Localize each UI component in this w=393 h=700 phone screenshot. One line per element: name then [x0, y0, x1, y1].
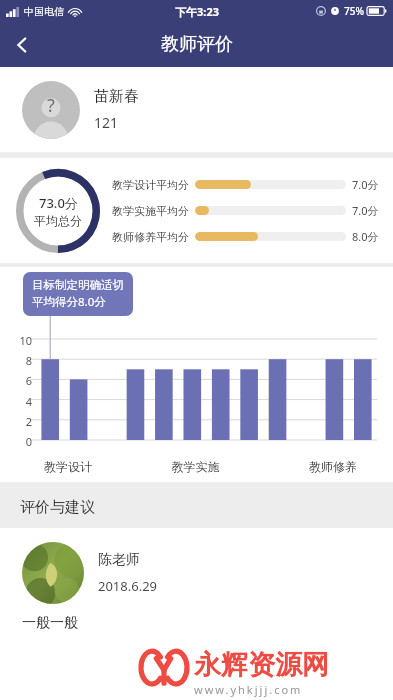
staticText: 73.0分 — [39, 194, 78, 212]
staticText: 6 — [10, 373, 32, 388]
staticText: 教学设计 — [30, 459, 106, 474]
staticText: 一般一般 — [22, 614, 78, 632]
staticText: 评价与建议 — [20, 498, 95, 517]
staticText: 7.0分 — [352, 177, 379, 192]
staticText: 中国电信 — [24, 5, 64, 18]
button[interactable]: 目标制定明确适切 — [23, 272, 133, 316]
staticText: 平均总分 — [34, 213, 82, 228]
staticText: 苗新春 — [94, 87, 139, 106]
staticText: 平均得分8.0分 — [32, 294, 106, 310]
staticText: 教师评价 — [161, 33, 233, 56]
staticText: 7.0分 — [352, 203, 379, 218]
staticText: 永辉资源网 — [194, 648, 329, 682]
staticText: 教学设计平均分 — [112, 178, 189, 192]
staticText: 陈老师 — [98, 551, 140, 569]
staticText: 教师修养平均分 — [112, 230, 189, 244]
staticText: 0 — [10, 434, 32, 449]
staticText: 下午3:23 — [175, 4, 219, 19]
staticText: www.yhkjjj.com — [194, 682, 303, 697]
staticText: 10 — [10, 333, 32, 348]
staticText: 教师修养 — [285, 459, 381, 474]
staticText: ? — [47, 93, 55, 118]
button[interactable]: 陈老师 — [0, 528, 393, 640]
button[interactable]: Back — [0, 23, 44, 67]
button[interactable]: ? — [0, 67, 393, 152]
staticText: 4 — [10, 394, 32, 409]
staticText: 8 — [10, 353, 32, 368]
staticText: 121 — [94, 113, 119, 132]
staticText: 教学实施 — [106, 459, 285, 474]
staticText: 2018.6.29 — [98, 577, 158, 595]
staticText: 2 — [10, 414, 32, 429]
staticText: 目标制定明确适切 — [32, 278, 124, 292]
staticText: 8.0分 — [352, 229, 379, 244]
staticText: 教学实施平均分 — [112, 204, 189, 218]
staticText: 75% — [344, 4, 364, 18]
